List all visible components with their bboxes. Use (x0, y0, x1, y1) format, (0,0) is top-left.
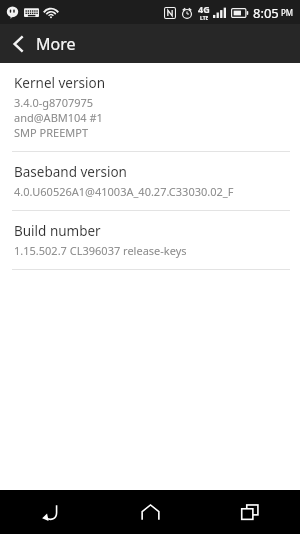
staticText: LTE (200, 15, 209, 22)
button[interactable]: Build number (0, 211, 300, 269)
staticText: and@ABM104 #1 (14, 110, 103, 125)
staticText: 3.4.0-g8707975 (14, 95, 94, 110)
button[interactable]: Recent apps (200, 490, 300, 534)
staticText: Baseband version (14, 163, 127, 181)
staticText: More (36, 33, 76, 55)
staticText: 4.0.U60526A1@41003A_40.27.C33030.02_F (14, 184, 234, 199)
staticText: 8:05 (253, 4, 279, 22)
staticText: 1.15.502.7 CL396037 release-keys (14, 243, 187, 258)
button[interactable]: Home (100, 490, 200, 534)
staticText: SMP PREEMPT (14, 125, 89, 140)
button[interactable]: Kernel version (0, 63, 300, 151)
staticText: 4G (198, 3, 210, 15)
button[interactable]: Back (0, 24, 36, 63)
button[interactable]: Baseband version (0, 152, 300, 210)
staticText: PM (281, 7, 294, 18)
staticText: Kernel version (14, 74, 106, 92)
staticText: Build number (14, 222, 101, 240)
button[interactable]: Back (0, 490, 100, 534)
